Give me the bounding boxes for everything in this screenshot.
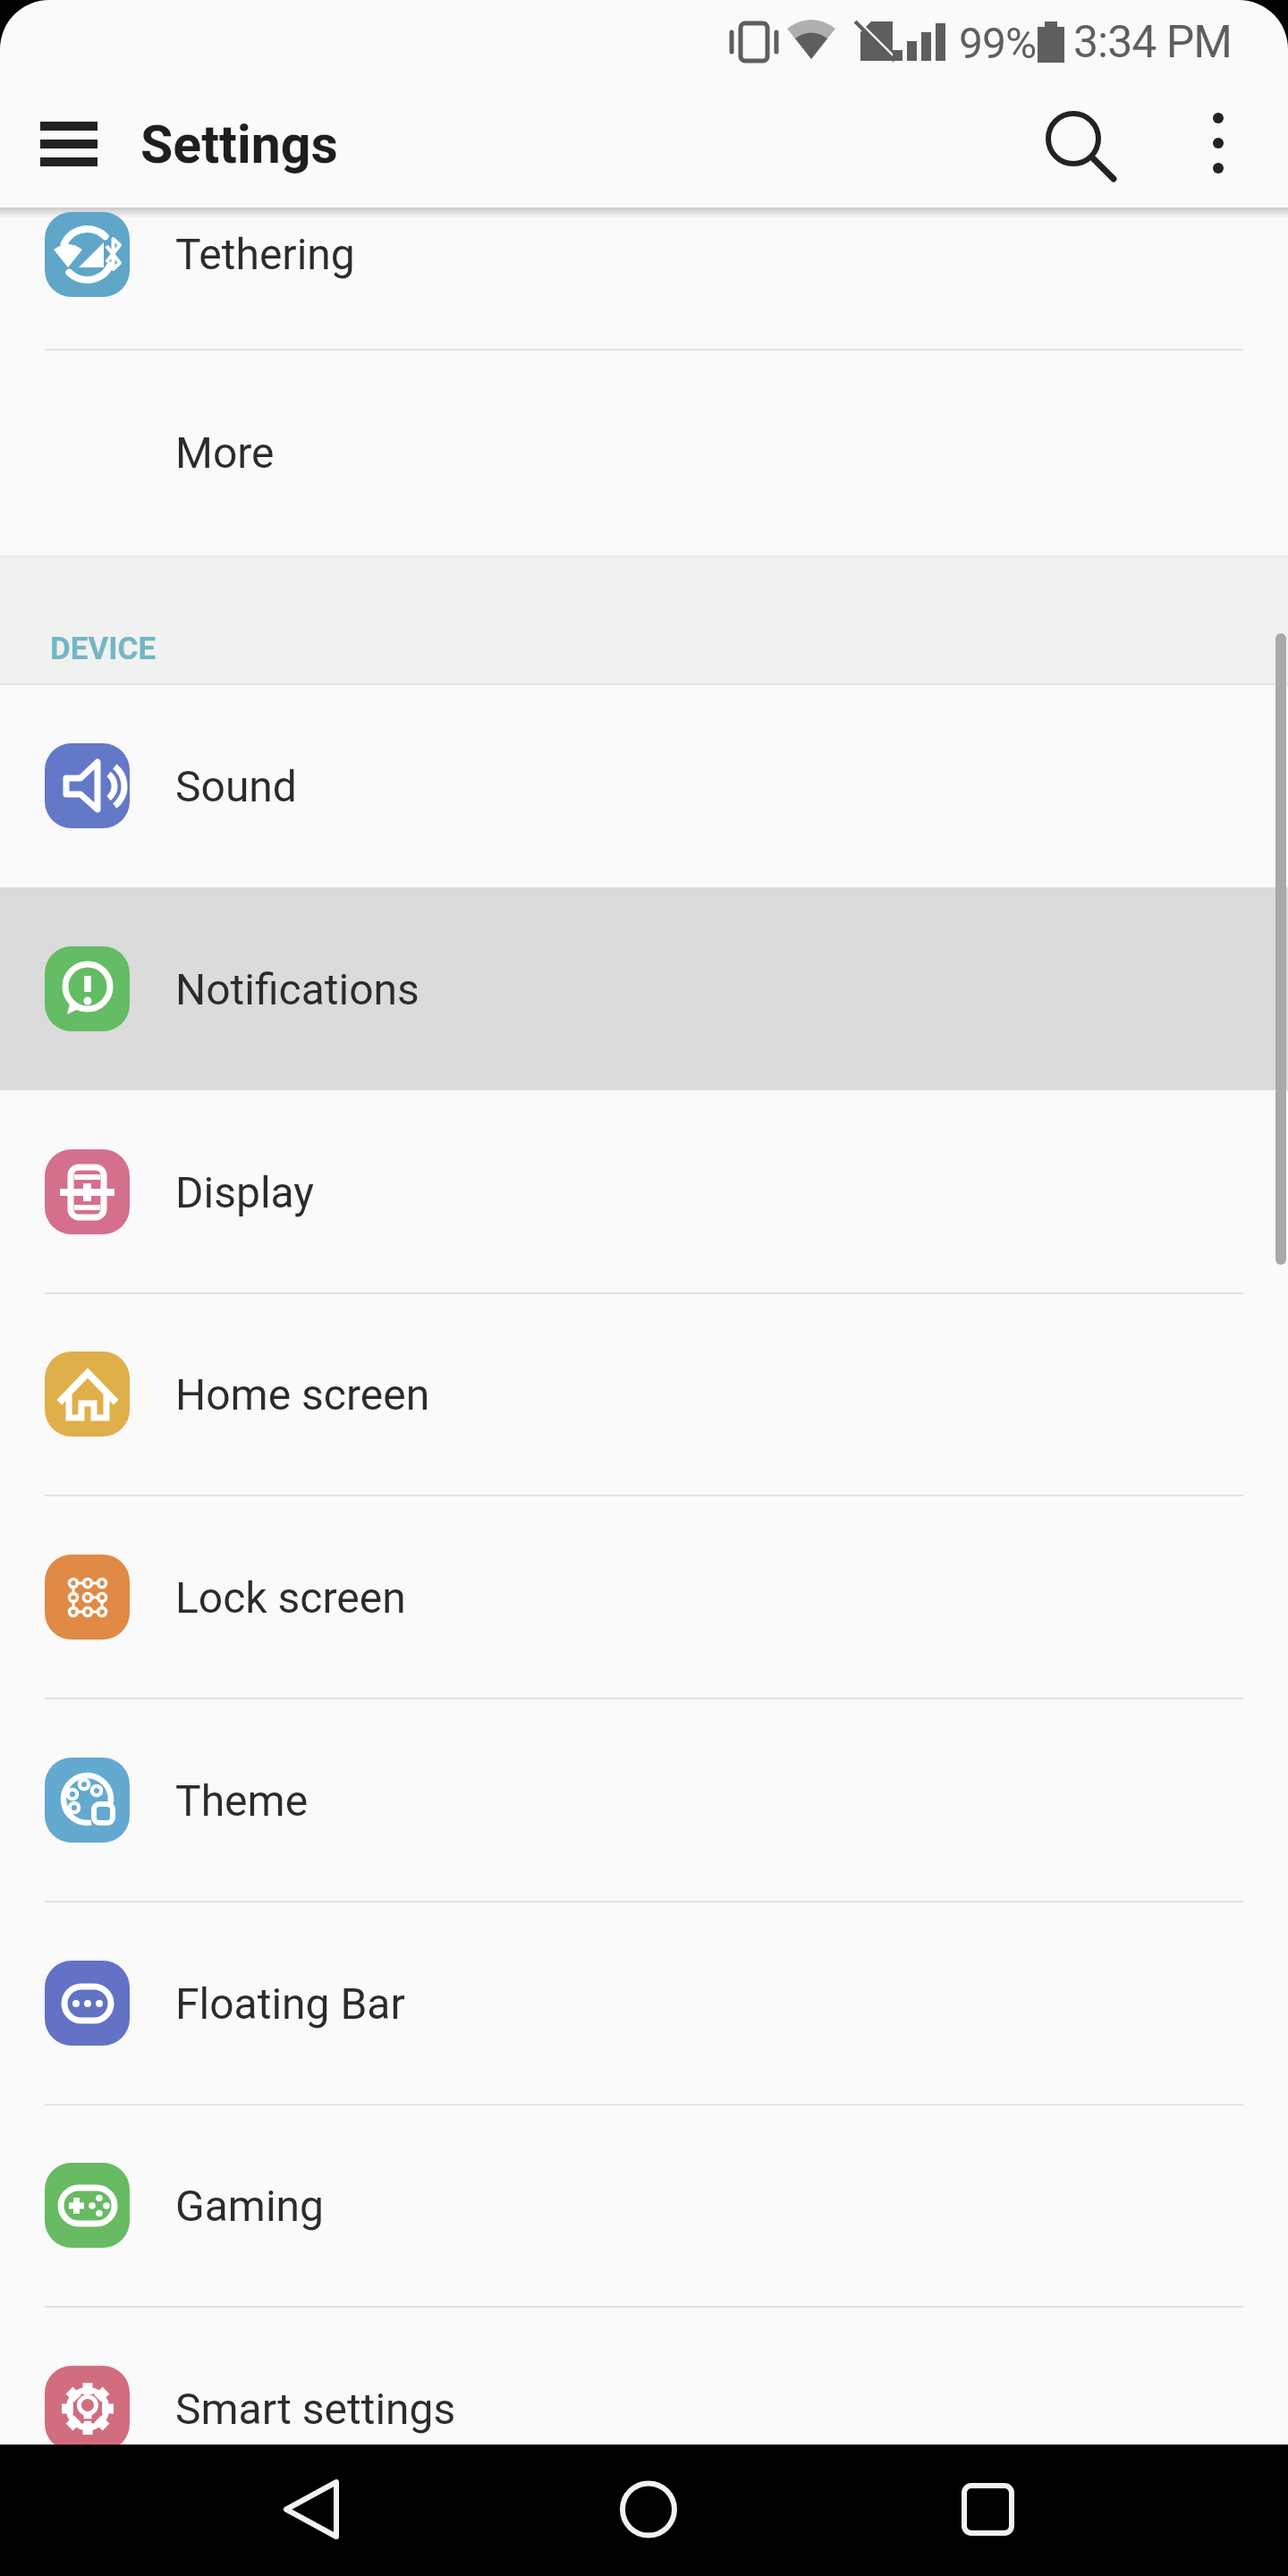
button[interactable]: Home screen (0, 1293, 1288, 1496)
staticText: Home screen (175, 1369, 430, 1419)
button[interactable]: Smart settings (0, 2307, 1288, 2510)
button[interactable]: More (0, 349, 1288, 556)
button[interactable]: Display (0, 1090, 1288, 1293)
staticText: Settings (140, 114, 338, 175)
staticText: Notifications (175, 964, 419, 1014)
button[interactable] (1024, 89, 1131, 197)
staticText: Sound (175, 761, 297, 811)
staticText: DEVICE (50, 631, 157, 667)
button[interactable] (1167, 89, 1270, 192)
button[interactable] (21, 98, 115, 192)
button[interactable]: Notifications (0, 887, 1288, 1090)
staticText: Gaming (175, 2181, 325, 2231)
staticText: Theme (175, 1775, 309, 1826)
staticText: 3:34 PM (1073, 16, 1233, 69)
staticText: Floating Bar (175, 1979, 405, 2029)
staticText: 99% (959, 18, 1037, 68)
staticText: Lock screen (175, 1572, 406, 1623)
staticText: Display (175, 1167, 315, 1217)
button[interactable] (250, 2445, 376, 2576)
button[interactable]: Gaming (0, 2105, 1288, 2307)
staticText: Smart settings (175, 2384, 456, 2434)
button[interactable] (925, 2445, 1050, 2576)
button[interactable]: Lock screen (0, 1496, 1288, 1699)
button[interactable]: Floating Bar (0, 1902, 1288, 2105)
staticText: More (175, 428, 275, 478)
staticText: Tethering (175, 229, 355, 279)
button[interactable]: Theme (0, 1699, 1288, 1902)
button[interactable]: Sound (0, 684, 1288, 887)
button[interactable] (586, 2445, 711, 2576)
button[interactable]: Tethering (0, 208, 1288, 349)
